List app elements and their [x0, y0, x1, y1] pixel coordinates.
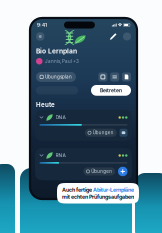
staticText: Auch fertige	[62, 186, 93, 193]
button[interactable]: Edit	[109, 33, 117, 40]
button[interactable]: Account	[36, 32, 44, 41]
staticText: Heute	[36, 101, 55, 108]
staticText: 9:41	[37, 22, 47, 28]
staticText: mit echten Prüfungsaufgaben	[62, 194, 134, 200]
button[interactable]: Notes	[98, 72, 107, 81]
staticText: Bio Lernplan	[36, 47, 77, 55]
staticText: Übungen	[93, 130, 114, 135]
staticText: RNA	[55, 153, 65, 158]
staticText: Beitreten	[100, 87, 122, 93]
staticText: Übungsplan	[45, 74, 72, 80]
button[interactable]: RNA	[30, 148, 137, 180]
staticText: Übungen	[91, 169, 112, 174]
staticText: DNA	[55, 115, 65, 120]
button[interactable]: Beitreten	[91, 85, 131, 96]
button[interactable]: Documents	[122, 72, 131, 81]
button[interactable]: More	[123, 32, 131, 40]
button[interactable]: DNA	[30, 110, 137, 141]
button[interactable]: Übungsplan	[36, 72, 76, 82]
staticText: Abitur-Lernpläne	[93, 186, 134, 193]
button[interactable]: List	[110, 72, 119, 81]
staticText: Jannis, Paul +3	[45, 58, 79, 64]
